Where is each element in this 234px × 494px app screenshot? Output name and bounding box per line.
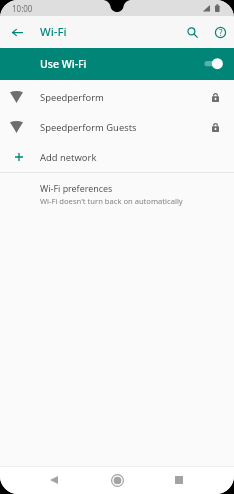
button[interactable]: Add network [0, 142, 234, 172]
button[interactable]: Speedperform [0, 82, 234, 112]
button[interactable]: Speedperform Guests [0, 112, 234, 142]
staticText: Wi-Fi doesn't turn back on automatically [40, 196, 183, 206]
button[interactable]: Navigate up [5, 20, 29, 44]
staticText: Wi-Fi [40, 24, 67, 40]
button[interactable]: Use Wi-Fi [0, 48, 234, 80]
staticText: Speedperform Guests [40, 121, 137, 134]
staticText: Add network [40, 151, 97, 164]
staticText: Use Wi-Fi [40, 57, 87, 71]
button[interactable]: Back [42, 468, 66, 492]
staticText: Wi-Fi preferences [40, 182, 113, 194]
button[interactable]: Recent apps [167, 468, 191, 492]
staticText: Speedperform [40, 91, 104, 104]
button[interactable]: Wi-Fi preferences [0, 173, 234, 211]
staticText: 10:00 [12, 3, 33, 14]
button[interactable]: Home [105, 468, 129, 492]
staticText: ? [219, 27, 223, 38]
button[interactable]: Help [208, 20, 232, 44]
button[interactable]: Search [180, 20, 204, 44]
